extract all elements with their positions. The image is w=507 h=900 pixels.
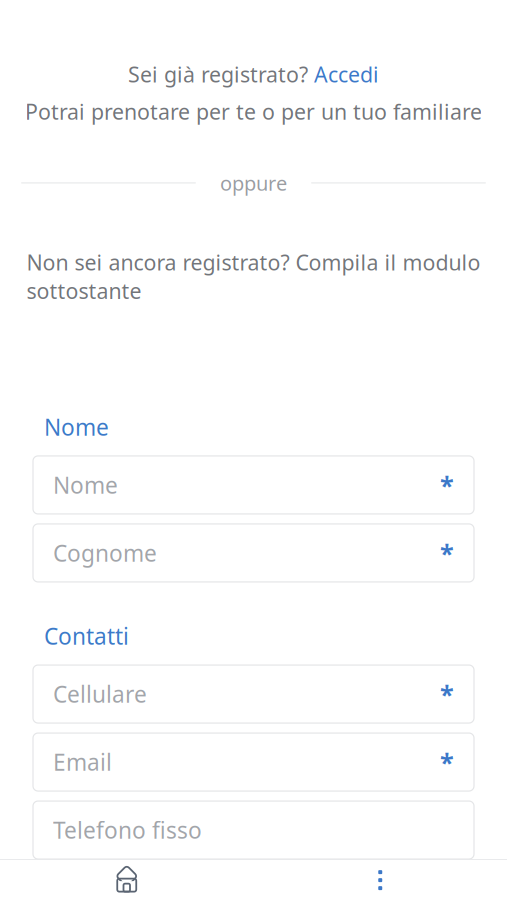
staticText: * xyxy=(440,536,454,570)
staticText: Nome xyxy=(44,412,109,442)
staticText: * xyxy=(440,677,454,711)
staticText: oppure xyxy=(220,170,287,196)
button[interactable]: Accedi xyxy=(314,60,379,88)
button[interactable]: Cognome xyxy=(0,524,507,582)
staticText: Cognome xyxy=(53,538,157,568)
staticText: * xyxy=(440,468,454,502)
button[interactable]: Home xyxy=(0,857,253,900)
staticText: Nome xyxy=(53,470,118,500)
button[interactable]: Nome xyxy=(0,456,507,514)
staticText: Sei già registrato? xyxy=(128,60,314,88)
staticText: Cellulare xyxy=(53,679,147,709)
staticText: Telefono fisso xyxy=(53,815,202,845)
button[interactable]: Menu xyxy=(253,857,507,900)
button[interactable]: Telefono fisso xyxy=(0,801,507,859)
staticText: Contatti xyxy=(44,621,129,651)
staticText: Potrai prenotare per te o per un tuo fam… xyxy=(25,97,482,126)
button[interactable]: Cellulare xyxy=(0,665,507,723)
button[interactable]: Email xyxy=(0,733,507,791)
staticText: Email xyxy=(53,747,112,777)
staticText: Non sei ancora registrato? Compila il mo… xyxy=(26,248,480,305)
staticText: * xyxy=(440,745,454,779)
staticText: Accedi xyxy=(314,60,379,88)
